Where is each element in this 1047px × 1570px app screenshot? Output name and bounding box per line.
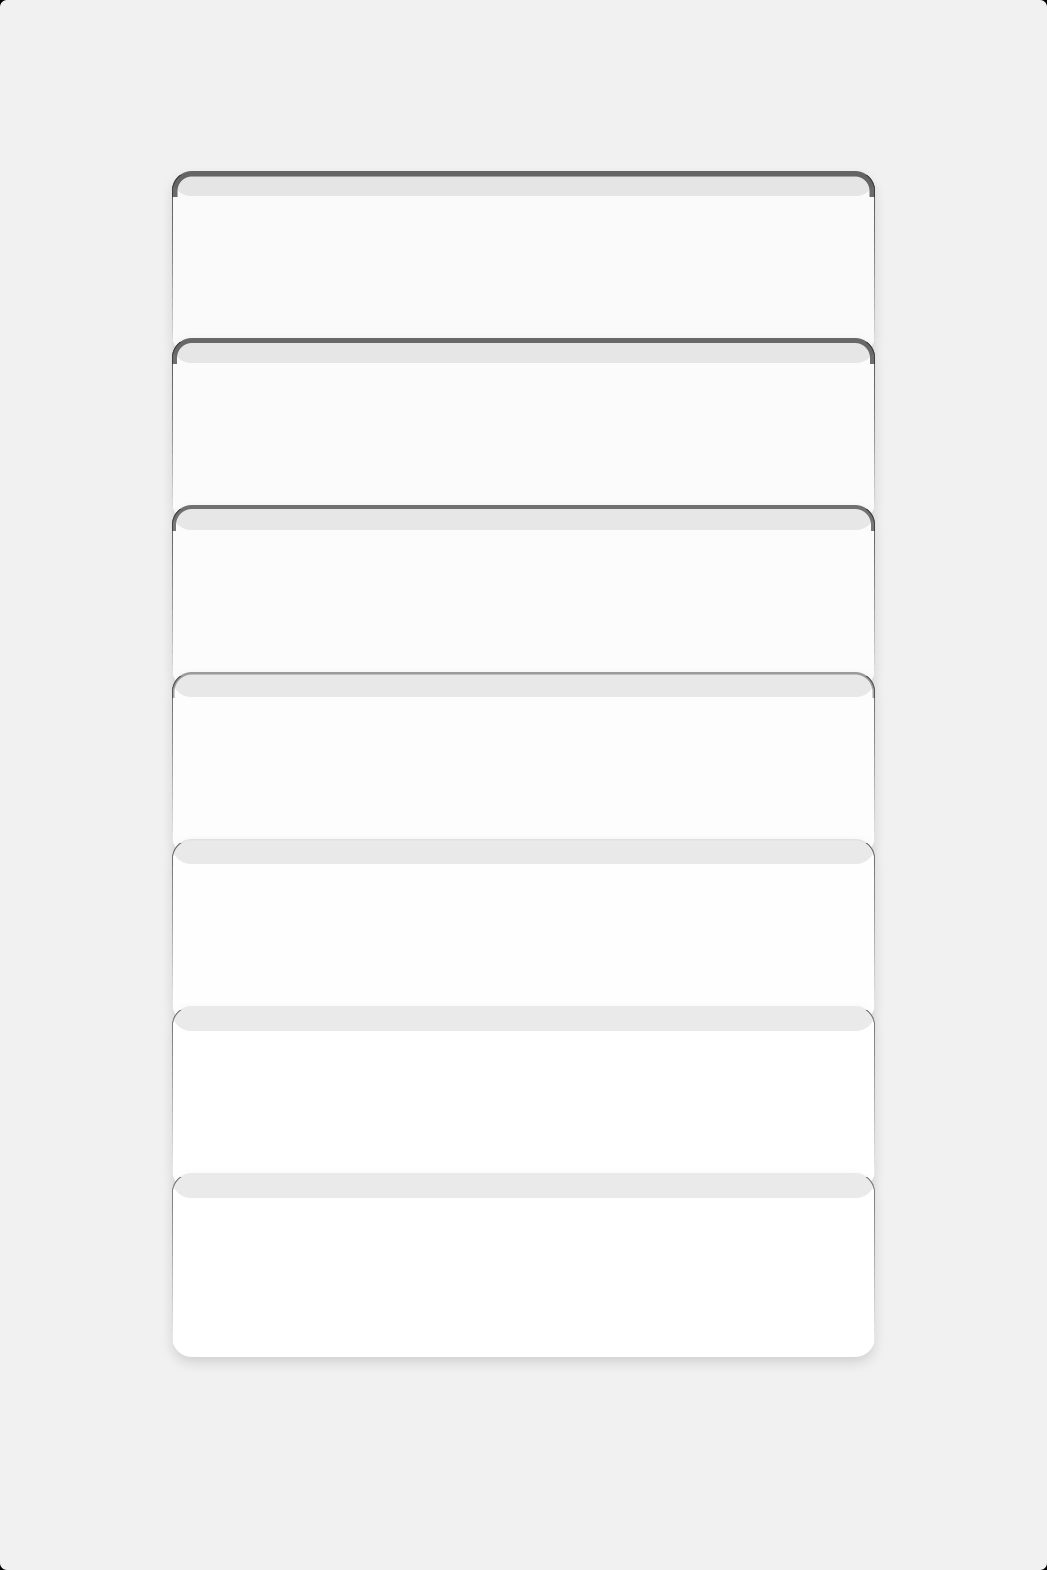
button[interactable] xyxy=(172,1173,875,1357)
button[interactable] xyxy=(172,505,875,689)
button[interactable] xyxy=(172,338,875,522)
button[interactable] xyxy=(172,1006,875,1190)
button[interactable] xyxy=(172,839,875,1023)
button[interactable] xyxy=(172,672,875,856)
button[interactable] xyxy=(172,171,875,355)
